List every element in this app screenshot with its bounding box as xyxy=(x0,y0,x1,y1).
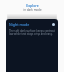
staticText: Night mode xyxy=(9,22,30,27)
button[interactable]: Night mode xyxy=(6,19,58,72)
staticText: in dark mode xyxy=(23,8,42,12)
staticText: Explore xyxy=(26,3,39,8)
staticText: The soft dark surface keeps contrast low… xyxy=(9,29,55,36)
